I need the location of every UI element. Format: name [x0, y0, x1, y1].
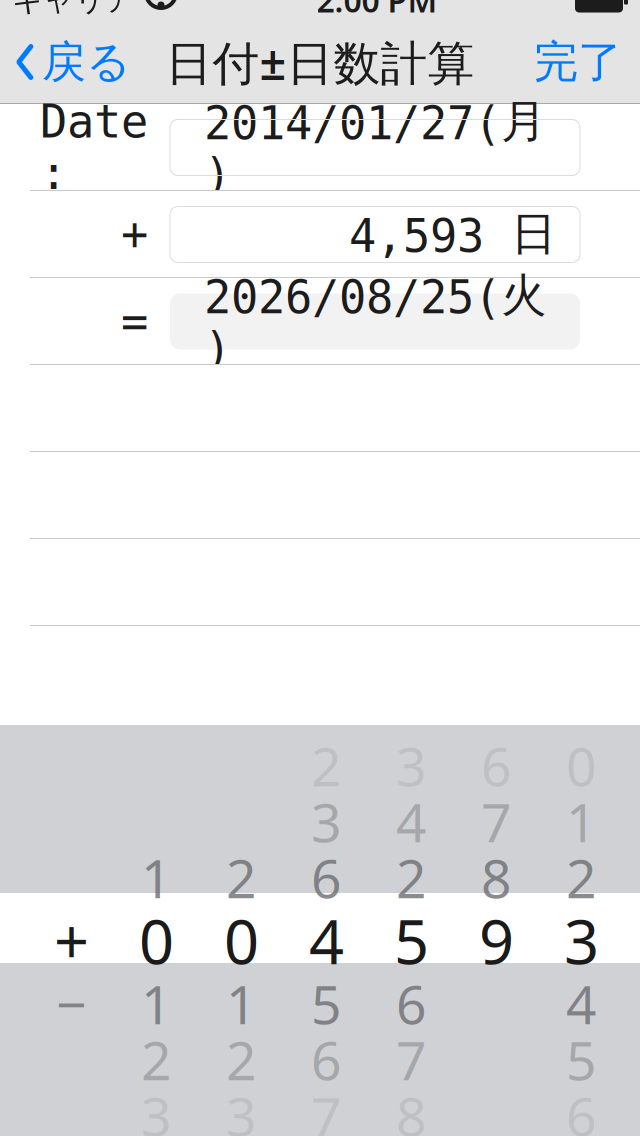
button[interactable]: + [0, 191, 640, 278]
staticText: 8 [396, 1080, 427, 1136]
staticText: 完了 [534, 35, 622, 89]
staticText: 7 [481, 786, 512, 857]
staticText: 7 [311, 1080, 342, 1136]
staticText: 2026/08/25(火) [204, 268, 546, 375]
staticText: 2 [311, 730, 342, 801]
staticText: 6 [311, 1024, 342, 1095]
staticText: 2 [396, 842, 427, 913]
button[interactable]: 戻る [0, 20, 145, 104]
staticText: 3 [311, 786, 342, 857]
staticText: 4 [396, 786, 427, 857]
staticText: + [54, 900, 89, 981]
staticText: 9 [479, 900, 514, 981]
button[interactable]: Date: [0, 104, 640, 191]
staticText: 6 [396, 968, 427, 1039]
staticText: 2 [141, 1024, 172, 1095]
staticText: Date: [40, 96, 148, 199]
staticText: 2 [226, 842, 257, 913]
staticText: 3 [141, 1080, 172, 1136]
staticText: 1 [141, 968, 172, 1039]
staticText: 4 [566, 968, 597, 1039]
staticText: 戻る [42, 35, 131, 89]
staticText: + [121, 209, 148, 260]
staticText: 2 [226, 1024, 257, 1095]
staticText: 0 [224, 900, 259, 981]
staticText: 5 [394, 900, 429, 981]
staticText: 日付±日数計算 [165, 31, 474, 93]
button[interactable]: 完了 [516, 20, 640, 104]
staticText: キャリア [12, 0, 136, 19]
staticText: 1 [141, 842, 172, 913]
staticText: 0 [139, 900, 174, 981]
staticText: 6 [481, 730, 512, 801]
staticText: 7 [396, 1024, 427, 1095]
staticText: 5 [311, 968, 342, 1039]
staticText: 3 [564, 900, 599, 981]
staticText: 2 [566, 842, 597, 913]
staticText: 6 [311, 842, 342, 913]
staticText: 5 [566, 1024, 597, 1095]
staticText: 0 [566, 730, 597, 801]
staticText: − [56, 968, 87, 1039]
staticText: 3 [396, 730, 427, 801]
staticText: 8 [481, 842, 512, 913]
staticText: 2:00 PM [316, 0, 437, 21]
staticText: 1 [226, 968, 257, 1039]
staticText: 4,593 日 [349, 207, 556, 262]
staticText [64, 842, 78, 913]
staticText: = [121, 296, 148, 347]
button[interactable]: = [0, 278, 640, 365]
staticText: 4 [309, 900, 344, 981]
staticText: 2014/01/27(月) [204, 94, 546, 201]
staticText: 3 [226, 1080, 257, 1136]
staticText: 1 [566, 786, 597, 857]
staticText: 6 [566, 1080, 597, 1136]
